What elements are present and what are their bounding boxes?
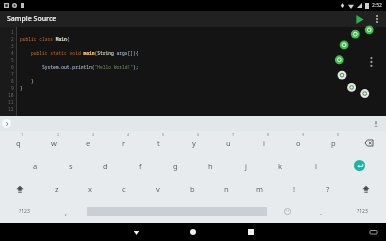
button[interactable]: Voice input bbox=[371, 119, 381, 129]
staticText: ? bbox=[326, 184, 330, 194]
staticText: b bbox=[190, 184, 195, 194]
staticText: w bbox=[51, 138, 57, 148]
button[interactable]: Run bbox=[350, 11, 368, 27]
staticText: 3 bbox=[92, 132, 95, 137]
staticText: ?123 bbox=[19, 208, 30, 215]
staticText: , bbox=[65, 207, 68, 217]
button[interactable]: More options bbox=[368, 11, 386, 27]
staticText: 9 bbox=[302, 132, 305, 137]
staticText: 11 bbox=[8, 99, 14, 105]
staticText: 6 bbox=[11, 64, 14, 70]
button[interactable]: d bbox=[88, 154, 123, 177]
button[interactable]: Home bbox=[184, 223, 202, 241]
staticText: o bbox=[296, 138, 301, 148]
staticText: g bbox=[173, 161, 178, 171]
staticText: 12 bbox=[8, 106, 14, 112]
staticText: i bbox=[263, 138, 265, 148]
button[interactable]: a bbox=[18, 154, 53, 177]
button[interactable]: Recent apps bbox=[242, 223, 260, 241]
staticText: 5 bbox=[11, 57, 14, 63]
staticText: 6 bbox=[197, 132, 200, 137]
staticText: s bbox=[69, 161, 73, 171]
staticText: t bbox=[157, 138, 160, 148]
button[interactable]: c bbox=[107, 177, 141, 200]
staticText: k bbox=[278, 161, 283, 171]
staticText: 7 bbox=[232, 132, 235, 137]
staticText: 9 bbox=[11, 85, 14, 91]
staticText: 10 bbox=[8, 92, 14, 98]
button[interactable]: ! bbox=[277, 177, 311, 200]
button[interactable]: Hide keyboard bbox=[366, 225, 380, 239]
staticText: f bbox=[139, 161, 142, 171]
staticText: v bbox=[156, 184, 160, 194]
staticText: System.out.println("Hello World!"); bbox=[20, 64, 139, 70]
button[interactable]: ?123 bbox=[338, 200, 386, 223]
staticText: y bbox=[192, 138, 196, 148]
staticText: p bbox=[331, 138, 336, 148]
staticText: Sample Source bbox=[7, 14, 57, 24]
button[interactable]: u bbox=[211, 131, 246, 154]
staticText: q bbox=[16, 138, 21, 148]
button[interactable]: k bbox=[263, 154, 298, 177]
button[interactable]: j bbox=[228, 154, 263, 177]
button[interactable]: v bbox=[141, 177, 175, 200]
button[interactable]: Shift bbox=[0, 177, 40, 200]
staticText: e bbox=[86, 138, 91, 148]
staticText: 8 bbox=[11, 78, 14, 84]
button[interactable]: ?123 bbox=[0, 200, 49, 223]
button[interactable]: r bbox=[106, 131, 141, 154]
staticText: 7 bbox=[11, 71, 14, 77]
staticText: x bbox=[88, 184, 92, 194]
button[interactable]: Shift bbox=[345, 177, 386, 200]
staticText: 2 bbox=[57, 132, 60, 137]
button[interactable]: o bbox=[281, 131, 316, 154]
button[interactable]: g bbox=[158, 154, 193, 177]
staticText: 2 bbox=[11, 36, 14, 42]
button[interactable]: e bbox=[71, 131, 106, 154]
button[interactable]: ? bbox=[311, 177, 345, 200]
staticText: . bbox=[320, 207, 323, 217]
button[interactable]: Enter bbox=[333, 154, 386, 177]
button[interactable]: l bbox=[298, 154, 333, 177]
button[interactable]: Emoji bbox=[270, 200, 304, 223]
button[interactable]: m bbox=[243, 177, 277, 200]
button[interactable]: p bbox=[316, 131, 351, 154]
staticText: 8 bbox=[267, 132, 270, 137]
button[interactable]: i bbox=[246, 131, 281, 154]
button[interactable]: h bbox=[193, 154, 228, 177]
staticText: 4 bbox=[11, 50, 14, 56]
staticText: } bbox=[20, 78, 34, 84]
button[interactable]: q bbox=[0, 131, 36, 154]
staticText: z bbox=[55, 184, 59, 194]
staticText: } bbox=[20, 85, 23, 91]
button[interactable]: s bbox=[53, 154, 88, 177]
staticText: public static void main(String args[]){ bbox=[20, 50, 139, 56]
button[interactable]: Back bbox=[127, 223, 145, 241]
staticText: h bbox=[208, 161, 213, 171]
staticText: a bbox=[33, 161, 38, 171]
staticText: 2:52 bbox=[372, 2, 382, 9]
button[interactable]: f bbox=[123, 154, 158, 177]
staticText: 1 bbox=[11, 29, 14, 35]
button[interactable]: b bbox=[175, 177, 209, 200]
button[interactable]: Backspace bbox=[351, 131, 386, 154]
staticText: 0 bbox=[337, 132, 340, 137]
staticText: d bbox=[103, 161, 108, 171]
staticText: l bbox=[315, 161, 317, 171]
button[interactable]: w bbox=[36, 131, 71, 154]
staticText: j bbox=[245, 161, 247, 171]
button[interactable]: y bbox=[176, 131, 211, 154]
button[interactable]: t bbox=[141, 131, 176, 154]
button[interactable]: z bbox=[40, 177, 73, 200]
button[interactable]: x bbox=[73, 177, 107, 200]
staticText: 4 bbox=[127, 132, 130, 137]
staticText: 1 bbox=[21, 132, 24, 137]
button[interactable]: n bbox=[209, 177, 243, 200]
staticText: u bbox=[226, 138, 231, 148]
button[interactable]: , bbox=[49, 200, 84, 223]
staticText: c bbox=[122, 184, 126, 194]
staticText: ?123 bbox=[357, 208, 368, 215]
button[interactable]: Expand toolbar bbox=[2, 119, 11, 128]
